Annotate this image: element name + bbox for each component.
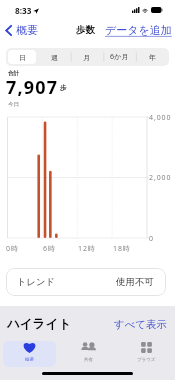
staticText: 今日 — [8, 101, 20, 108]
staticText: 12時 — [78, 244, 96, 254]
staticText: 月 — [83, 53, 90, 62]
button[interactable]: 年 — [138, 50, 167, 64]
staticText: 共有 — [84, 357, 93, 363]
staticText: 6か月 — [110, 52, 129, 62]
button[interactable]: 月 — [72, 50, 101, 64]
staticText: データを追加 — [105, 23, 172, 37]
staticText: 歩 — [60, 84, 67, 92]
staticText: ハイライト — [7, 316, 71, 332]
button[interactable]: トレンド — [6, 268, 166, 296]
button[interactable]: 6か月 — [105, 50, 134, 64]
staticText: 年 — [149, 53, 156, 62]
staticText: ブラウズ — [137, 357, 156, 363]
staticText: トレンド — [17, 276, 56, 288]
staticText: 日 — [19, 53, 26, 62]
button[interactable]: 日 — [8, 50, 36, 64]
staticText: 週 — [51, 53, 58, 62]
button[interactable]: 概要 — [3, 341, 56, 367]
button[interactable]: すべて表示 — [114, 318, 167, 331]
staticText: 合計 — [8, 70, 20, 77]
staticText: 7,907 — [6, 75, 59, 100]
staticText: 概要 — [25, 357, 34, 363]
staticText: 歩数 — [76, 24, 95, 36]
staticText: 4,000 — [149, 113, 172, 123]
button[interactable]: 週 — [40, 50, 68, 64]
staticText: 0 — [149, 234, 154, 244]
button[interactable]: 概要 — [5, 18, 38, 42]
button[interactable]: 共有 — [62, 341, 114, 367]
staticText: 8:33 — [15, 5, 32, 16]
button[interactable]: ブラウズ — [120, 341, 172, 367]
button[interactable]: データを追加 — [105, 18, 175, 42]
staticText: すべて表示 — [114, 318, 167, 331]
staticText: 2,000 — [149, 173, 172, 183]
staticText: 0時 — [6, 244, 19, 254]
staticText: 6時 — [43, 244, 56, 254]
staticText: 18時 — [113, 244, 131, 254]
staticText: 概要 — [16, 23, 38, 37]
staticText: 使用不可 — [116, 276, 154, 288]
